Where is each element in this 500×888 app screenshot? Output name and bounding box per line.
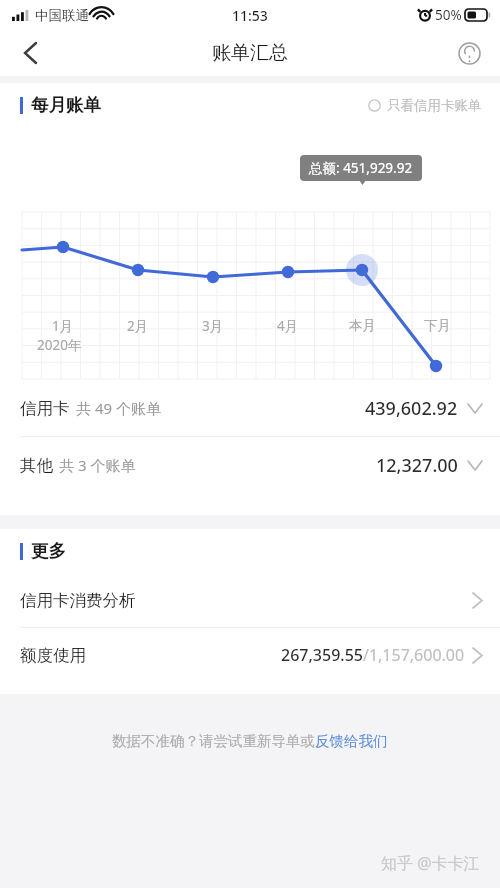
- button[interactable]: Back: [8, 31, 52, 75]
- staticText: 数据不准确？请尝试重新导单或反馈给我们: [112, 732, 388, 750]
- staticText: 12,327.00: [376, 453, 458, 478]
- staticText: 2月: [127, 317, 149, 335]
- button[interactable]: 只看信用卡账单: [368, 97, 482, 114]
- staticText: 本月: [349, 317, 376, 334]
- staticText: 更多: [31, 540, 66, 562]
- staticText: 每月账单: [31, 94, 101, 116]
- staticText: 知乎 @卡卡江: [381, 852, 480, 874]
- staticText: 中国联通: [35, 7, 89, 24]
- staticText: 信用卡: [20, 398, 70, 419]
- staticText: 总额: 451,929.92: [309, 159, 413, 177]
- button[interactable]: 数据不准确？请尝试重新导单或反馈给我们: [112, 732, 388, 750]
- staticText: 3月: [202, 317, 224, 335]
- button[interactable]: 额度使用: [0, 628, 500, 682]
- staticText: 共 3 个账单: [59, 455, 136, 475]
- staticText: 1月: [52, 317, 74, 335]
- staticText: 额度使用: [20, 645, 86, 666]
- staticText: 4月: [277, 317, 299, 335]
- staticText: 50%: [435, 6, 462, 24]
- staticText: 共 49 个账单: [76, 398, 161, 418]
- staticText: 账单汇总: [212, 41, 288, 65]
- button[interactable]: Help: [448, 32, 490, 74]
- staticText: 439,602.92: [365, 396, 458, 421]
- button[interactable]: 信用卡: [0, 380, 500, 436]
- staticText: 2020年: [37, 336, 82, 354]
- staticText: 267,359.55/1,157,600.00: [281, 644, 465, 666]
- staticText: 其他: [20, 455, 53, 476]
- staticText: 11:53: [232, 6, 268, 25]
- staticText: 只看信用卡账单: [387, 97, 482, 114]
- button[interactable]: 其他: [0, 437, 500, 493]
- staticText: 下月: [424, 317, 451, 334]
- button[interactable]: 信用卡消费分析: [0, 573, 500, 627]
- staticText: 信用卡消费分析: [20, 590, 136, 611]
